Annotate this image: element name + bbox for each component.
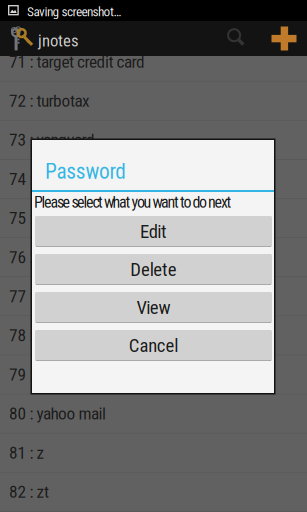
staticText: 74 : verizon bbox=[9, 169, 81, 189]
button[interactable]: 74 : verizon bbox=[0, 160, 307, 198]
staticText: 75 : wells fargo bbox=[9, 208, 106, 228]
button[interactable]: 71 : target credit card bbox=[0, 43, 307, 81]
button[interactable]: Cancel bbox=[35, 330, 272, 361]
staticText: Saving screenshot… bbox=[27, 4, 121, 20]
button[interactable]: 81 : z bbox=[0, 434, 307, 472]
button[interactable]: 73 : vanguard bbox=[0, 121, 307, 159]
button[interactable]: 78 : xfinity bbox=[0, 316, 307, 354]
staticText: Delete bbox=[130, 259, 177, 280]
button[interactable]: 75 : wells fargo bbox=[0, 199, 307, 237]
button[interactable]: 80 : yahoo mail bbox=[0, 395, 307, 433]
staticText: 76 : work bbox=[9, 247, 68, 267]
button[interactable]: 79 : y bbox=[0, 355, 307, 394]
staticText: 72 : turbotax bbox=[9, 91, 90, 111]
staticText: 81 : z bbox=[9, 443, 44, 463]
staticText: jnotes bbox=[38, 31, 79, 50]
staticText: Edit bbox=[140, 221, 167, 242]
button[interactable]: View bbox=[35, 292, 272, 323]
staticText: 77 : x bbox=[9, 286, 44, 306]
staticText: 82 : zt bbox=[9, 482, 49, 502]
button[interactable]: 82 : zt bbox=[0, 473, 307, 511]
staticText: 79 : y bbox=[9, 364, 43, 385]
staticText: View bbox=[136, 297, 170, 318]
staticText: Password bbox=[45, 159, 126, 184]
button[interactable]: Add note bbox=[262, 21, 306, 56]
staticText: 73 : vanguard bbox=[9, 130, 95, 150]
button[interactable]: Delete bbox=[35, 254, 272, 285]
staticText: 80 : yahoo mail bbox=[9, 403, 106, 424]
button[interactable]: 77 : x bbox=[0, 277, 307, 315]
staticText: Cancel bbox=[129, 335, 178, 356]
staticText: 71 : target credit card bbox=[9, 52, 145, 72]
button[interactable]: Edit bbox=[35, 216, 272, 247]
button[interactable]: 72 : turbotax bbox=[0, 82, 307, 120]
button[interactable]: 76 : work bbox=[0, 238, 307, 276]
staticText: 78 : xfinity bbox=[9, 325, 74, 346]
staticText: Please select what you want to do next bbox=[34, 193, 231, 212]
button[interactable]: Search bbox=[215, 21, 259, 56]
